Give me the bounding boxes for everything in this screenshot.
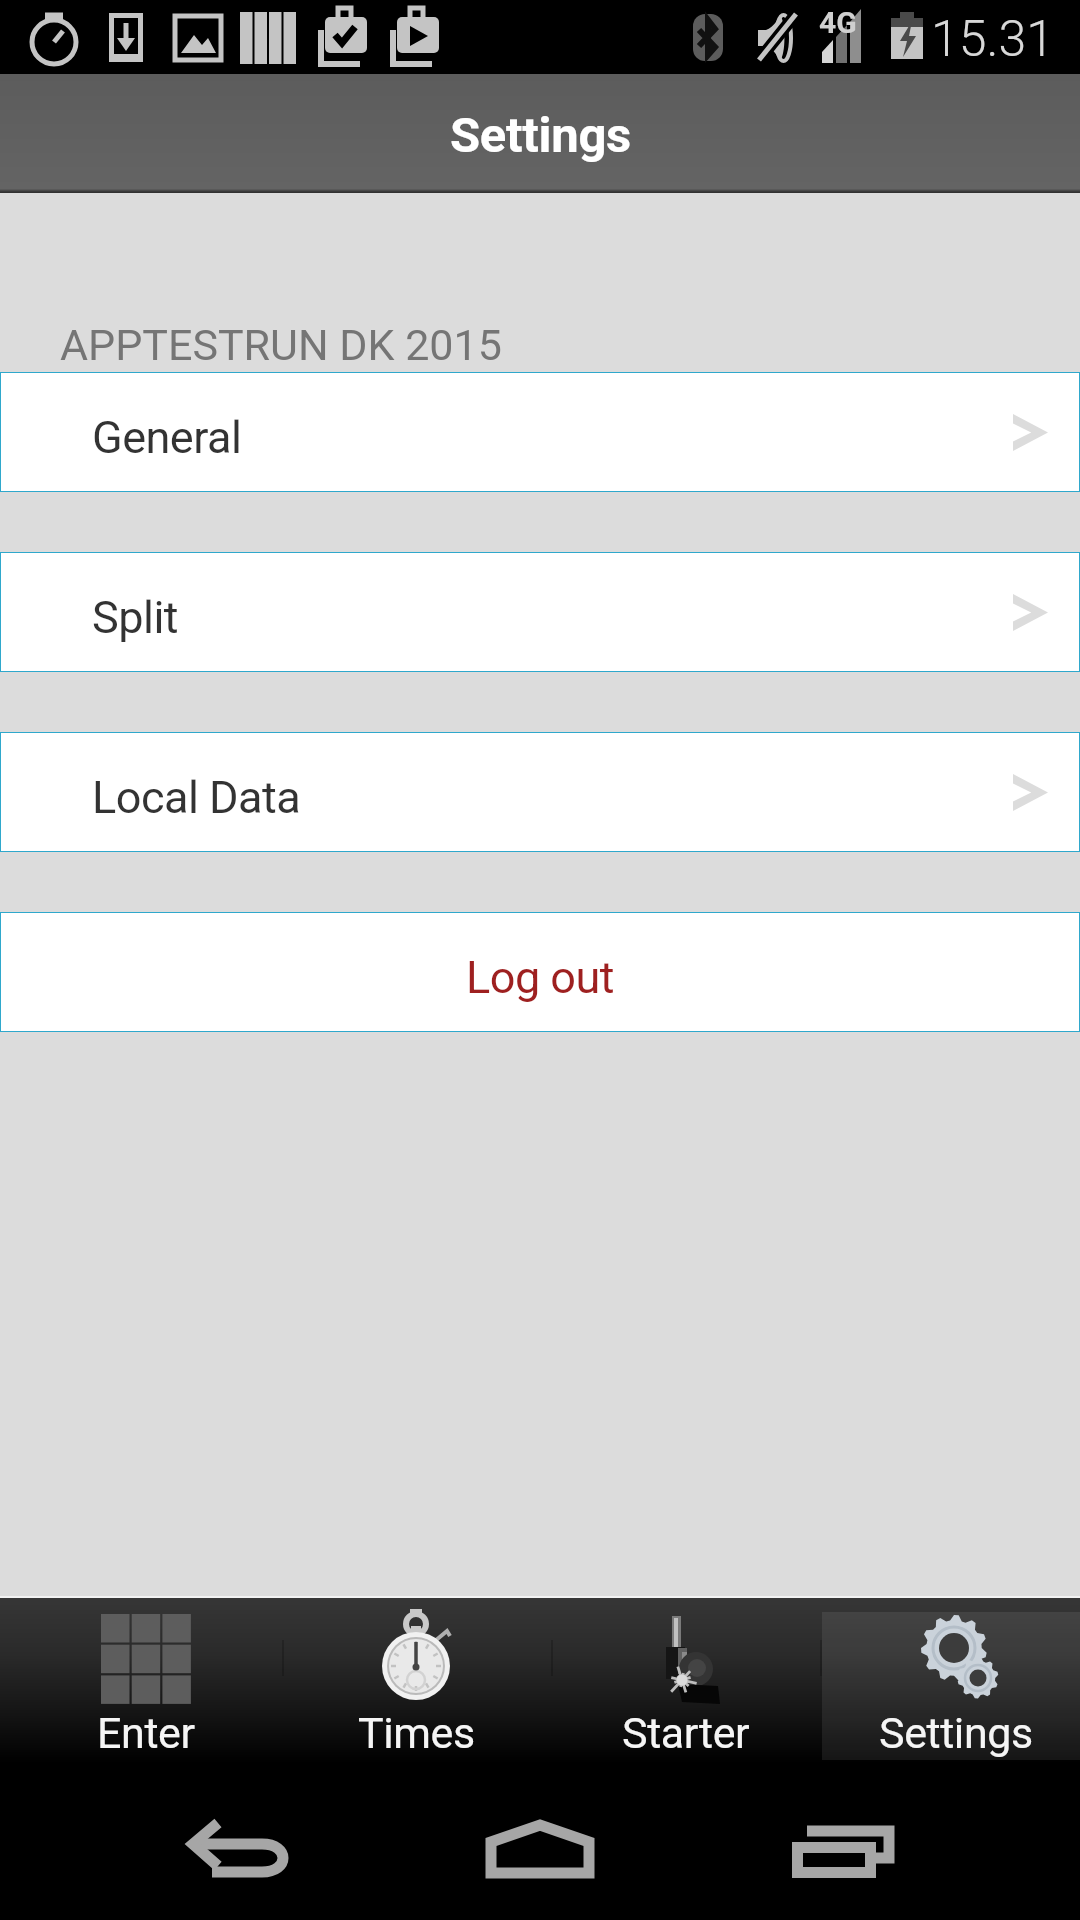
button[interactable]: Split — [1, 553, 1079, 671]
staticText: APPTESTRUN DK 2015 — [60, 320, 502, 370]
button[interactable]: Home — [450, 1786, 630, 1920]
staticText: 15.31 — [931, 10, 1054, 69]
staticText: Enter — [97, 1708, 195, 1758]
button[interactable]: Starter — [551, 1598, 821, 1786]
staticText: Times — [358, 1708, 475, 1758]
staticText: Split — [92, 591, 179, 644]
button[interactable]: Times — [281, 1598, 551, 1786]
staticText: Settings — [450, 107, 631, 164]
staticText: Starter — [622, 1708, 750, 1758]
button[interactable]: Local Data — [1, 733, 1079, 851]
staticText: General — [92, 411, 242, 464]
staticText: Local Data — [92, 771, 301, 824]
button[interactable]: Settings — [821, 1598, 1080, 1786]
button[interactable]: General — [1, 373, 1079, 491]
button[interactable]: Enter — [11, 1598, 281, 1786]
staticText: Log out — [466, 951, 615, 1004]
button[interactable]: Back — [150, 1786, 330, 1920]
staticText: Settings — [879, 1708, 1033, 1758]
button[interactable]: Log out — [1, 913, 1079, 1031]
button[interactable]: Recent apps — [760, 1786, 940, 1920]
staticText: 4G — [819, 5, 857, 40]
